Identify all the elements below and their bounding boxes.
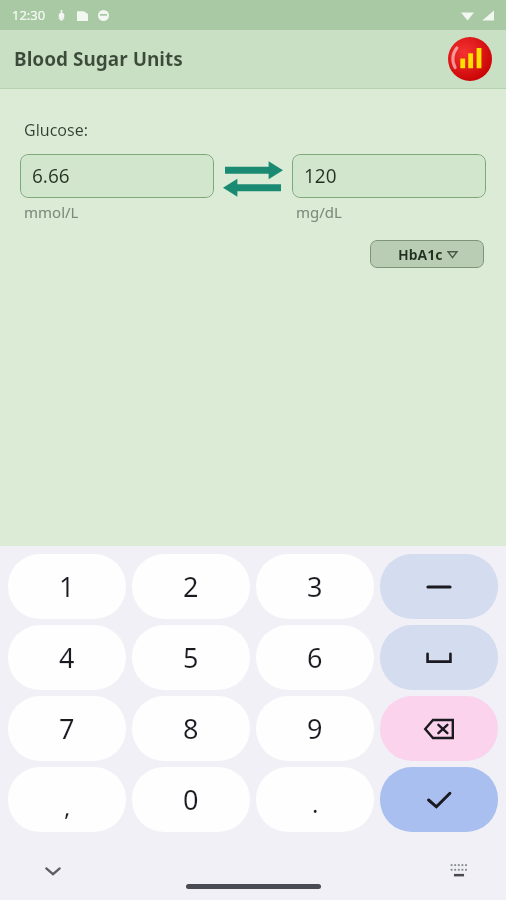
staticText: 4 xyxy=(59,639,75,676)
button[interactable]: Space xyxy=(380,625,498,690)
button[interactable]: Backspace xyxy=(380,696,498,761)
button[interactable]: 120 xyxy=(292,154,486,198)
button[interactable]: 5 xyxy=(132,625,250,690)
staticText: 6 xyxy=(307,639,323,676)
button[interactable]: 8 xyxy=(132,696,250,761)
staticText: 120 xyxy=(304,163,337,189)
button[interactable]: App icon xyxy=(448,37,492,81)
button[interactable]: Minus xyxy=(380,554,498,619)
staticText: 5 xyxy=(183,639,199,676)
button[interactable]: 1 xyxy=(8,554,126,619)
staticText: 2 xyxy=(183,568,199,605)
staticText: . xyxy=(312,787,319,820)
staticText: Glucose: xyxy=(24,119,89,141)
staticText: mg/dL xyxy=(296,202,342,222)
staticText: 0 xyxy=(183,781,199,818)
staticText: HbA1c xyxy=(398,245,443,264)
staticText: 1 xyxy=(59,568,75,605)
button[interactable]: 4 xyxy=(8,625,126,690)
staticText: 8 xyxy=(183,710,199,747)
button[interactable]: Enter xyxy=(380,767,498,832)
staticText: mmol/L xyxy=(24,202,79,222)
staticText: 6.66 xyxy=(32,163,70,189)
button[interactable]: 6.66 xyxy=(20,154,214,198)
button[interactable]: 7 xyxy=(8,696,126,761)
button[interactable]: 3 xyxy=(256,554,374,619)
button[interactable]: . xyxy=(256,767,374,832)
button[interactable]: Switch keyboard xyxy=(444,856,474,886)
button[interactable]: Hide keyboard xyxy=(38,856,68,886)
button[interactable]: HbA1c xyxy=(370,240,484,268)
staticText: 7 xyxy=(59,710,75,747)
staticText: 3 xyxy=(307,568,323,605)
button[interactable]: 0 xyxy=(132,767,250,832)
staticText: , xyxy=(64,790,71,823)
button[interactable]: 2 xyxy=(132,554,250,619)
staticText: Blood Sugar Units xyxy=(14,46,183,72)
staticText: 9 xyxy=(307,710,323,747)
button[interactable]: , xyxy=(8,767,126,832)
staticText: 12:30 xyxy=(12,6,46,24)
button[interactable]: 6 xyxy=(256,625,374,690)
button[interactable]: 9 xyxy=(256,696,374,761)
